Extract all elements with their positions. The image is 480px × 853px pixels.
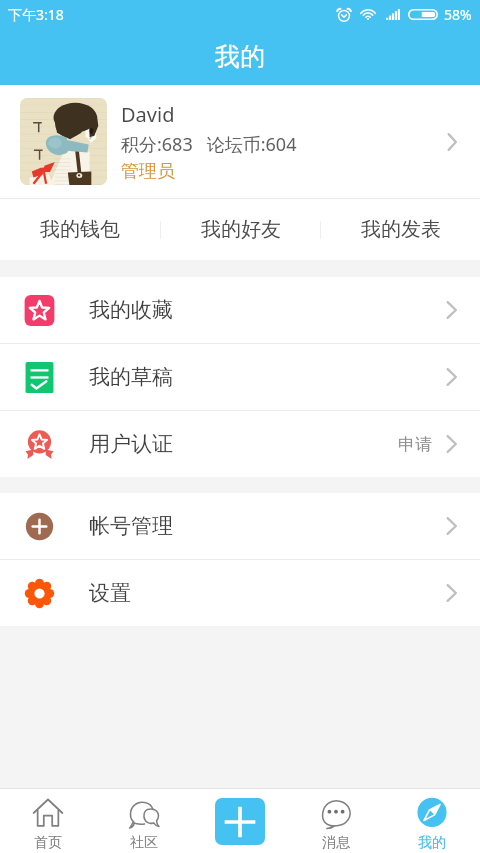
button[interactable]: 用户认证 (0, 411, 480, 477)
staticText: 我的 (418, 834, 446, 852)
staticText: David (121, 101, 175, 128)
button[interactable]: 我的收藏 (0, 277, 480, 343)
button[interactable]: 社区 (96, 789, 192, 853)
staticText: 管理员 (121, 160, 175, 183)
staticText: 申请 (398, 434, 432, 455)
staticText: 58% (444, 5, 472, 24)
staticText: 帐号管理 (89, 513, 173, 539)
staticText: 用户认证 (89, 431, 173, 457)
button[interactable]: 消息 (288, 789, 384, 853)
staticText: 我的收藏 (89, 297, 173, 323)
button[interactable]: 我的 (384, 789, 480, 853)
staticText: 我的发表 (361, 217, 441, 242)
button[interactable]: 我的钱包 (0, 199, 160, 260)
button[interactable]: 首页 (0, 789, 96, 853)
staticText: 我的钱包 (40, 217, 120, 242)
button[interactable]: 我的发表 (321, 199, 480, 260)
staticText: 我的草稿 (89, 364, 173, 390)
button[interactable]: 我的好友 (161, 199, 320, 260)
staticText: 社区 (130, 834, 158, 852)
staticText: 积分:683 论坛币:604 (121, 132, 297, 157)
staticText: 消息 (322, 834, 350, 852)
staticText: 设置 (89, 580, 131, 606)
button[interactable]: 设置 (0, 560, 480, 626)
button[interactable]: 我的草稿 (0, 344, 480, 410)
button[interactable]: 帐号管理 (0, 493, 480, 559)
staticText: 我的好友 (201, 217, 281, 242)
staticText: 首页 (34, 834, 62, 852)
staticText: 下午3:18 (8, 5, 64, 24)
staticText: 我的 (215, 41, 265, 72)
button[interactable]: David (0, 85, 480, 198)
button[interactable]: 发布 (192, 789, 288, 853)
